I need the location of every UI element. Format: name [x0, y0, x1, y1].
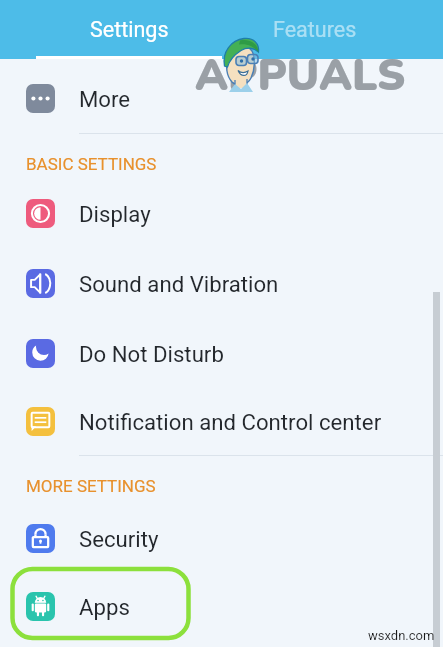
staticText: Display [79, 201, 151, 227]
staticText: Features [273, 17, 357, 42]
staticText: Security [79, 526, 159, 552]
staticText: More [79, 86, 131, 112]
staticText: MORE SETTINGS [26, 476, 156, 496]
button[interactable]: Sound and Vibration [0, 249, 443, 317]
button[interactable]: Features [222, 0, 408, 59]
staticText: wsxdn.com [368, 628, 435, 643]
staticText: Apps [79, 594, 130, 620]
button[interactable]: Settings [36, 0, 222, 59]
staticText: BASIC SETTINGS [26, 154, 157, 174]
button[interactable]: Apps [0, 572, 443, 640]
button[interactable]: Do Not Disturb [0, 319, 443, 387]
staticText: Notification and Control center [79, 409, 382, 435]
button[interactable]: More [0, 64, 443, 132]
staticText: Settings [90, 17, 169, 42]
button[interactable]: Display [0, 179, 443, 247]
staticText: Sound and Vibration [79, 271, 279, 297]
staticText: Do Not Disturb [79, 341, 224, 367]
button[interactable]: Security [0, 504, 443, 572]
button[interactable]: Notification and Control center [0, 387, 443, 455]
staticText: APPUALS [195, 46, 406, 105]
